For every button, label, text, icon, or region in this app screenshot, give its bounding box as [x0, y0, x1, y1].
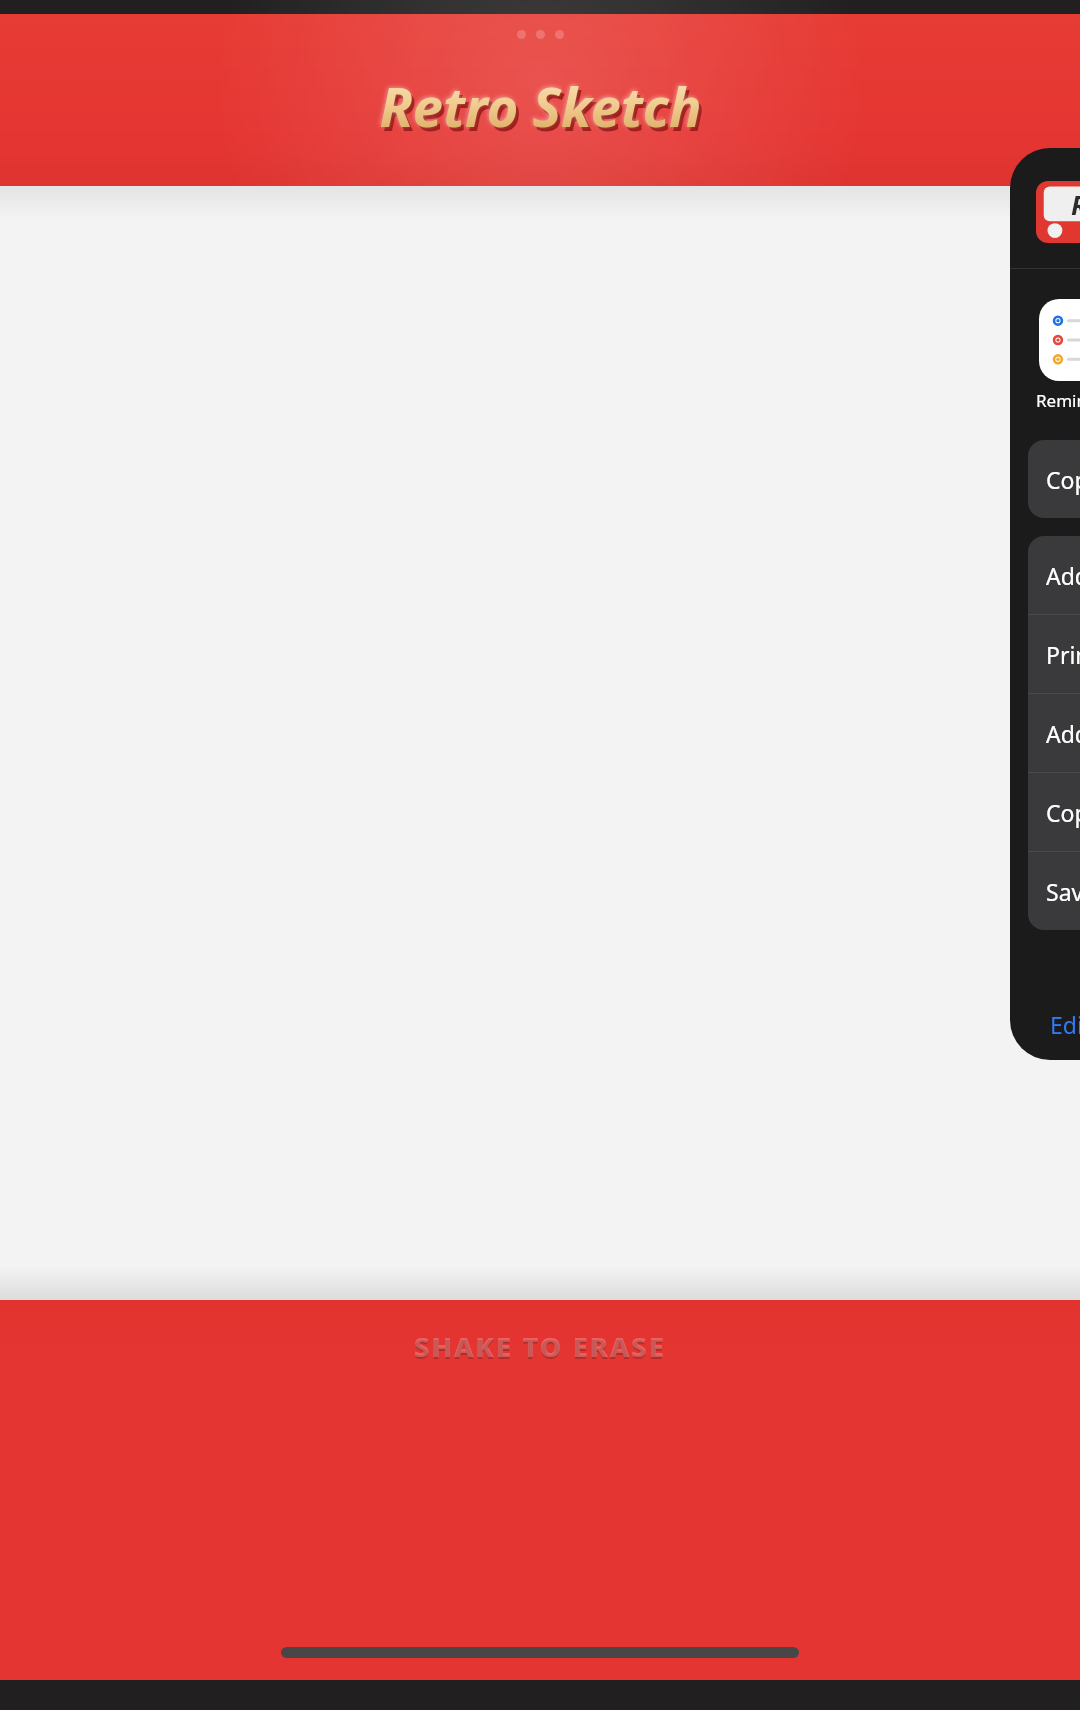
button[interactable]: Print — [1028, 615, 1080, 693]
staticText: R — [1071, 187, 1080, 222]
button[interactable]: Save to Files — [1028, 852, 1080, 930]
staticText: Reminders — [1036, 389, 1080, 412]
staticText: Add to Notes — [1046, 718, 1080, 749]
staticText: Retro Sketch — [379, 69, 702, 143]
button[interactable]: Add to Notes — [1028, 694, 1080, 772]
staticText: Print — [1046, 639, 1080, 670]
staticText: Copy to Files — [1046, 797, 1080, 828]
other: Retro Sketch app icon — [1036, 181, 1080, 243]
button[interactable]: Retro Sketch — [361, 65, 720, 147]
staticText: SHAKE TO ERASE — [414, 1328, 666, 1365]
button[interactable]: Edit Actions… — [1010, 1001, 1080, 1060]
staticText: Edit Actions… — [1050, 1009, 1080, 1040]
button[interactable]: Add to Photos — [1028, 536, 1080, 614]
staticText: Save to Files — [1046, 876, 1080, 907]
staticText: Copy — [1046, 464, 1080, 495]
staticText: Add to Photos — [1046, 560, 1080, 591]
button[interactable]: Copy — [1028, 440, 1080, 518]
staticText: SHAKE TO ERASE — [414, 1330, 666, 1367]
staticText: Retro Sketch — [382, 73, 705, 147]
button[interactable] — [0, 186, 1080, 1300]
button[interactable]: Reminders — [1039, 299, 1080, 381]
button[interactable]: Copy to Files — [1028, 773, 1080, 851]
button[interactable]: SHAKE TO ERASE — [400, 1322, 680, 1371]
